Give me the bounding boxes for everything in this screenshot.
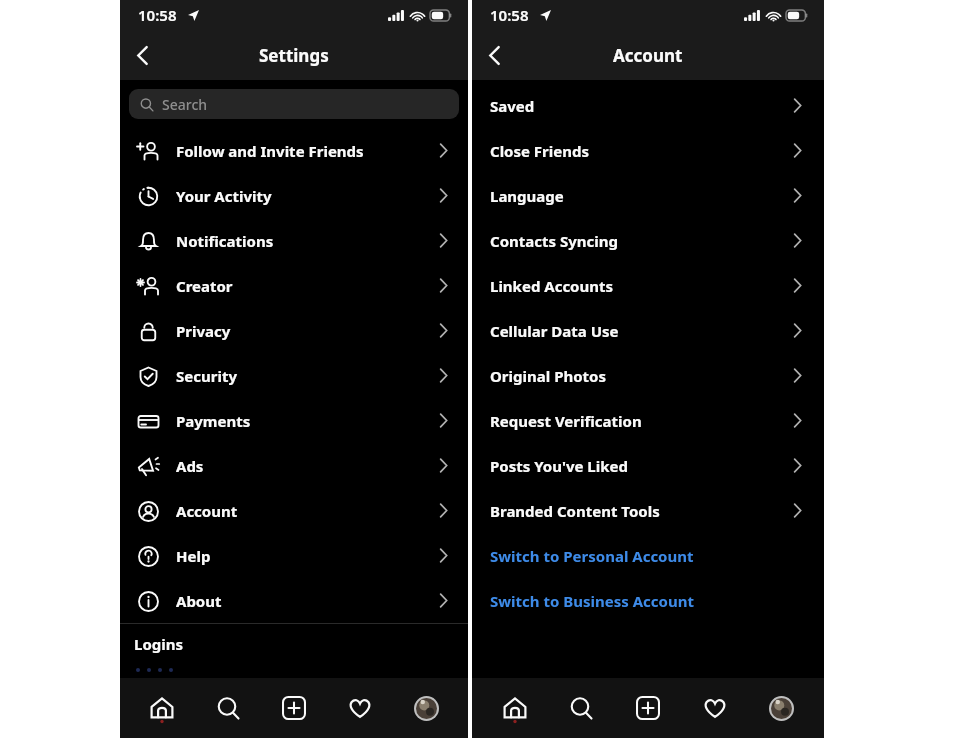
button[interactable]: Activity bbox=[691, 684, 739, 732]
staticText: Language bbox=[490, 186, 793, 206]
staticText: Switch to Business Account bbox=[490, 591, 694, 611]
button[interactable]: Request Verification bbox=[472, 398, 824, 443]
button[interactable]: Payments bbox=[120, 398, 468, 443]
staticText: Close Friends bbox=[490, 141, 793, 161]
staticText: Saved bbox=[490, 96, 793, 116]
staticText: Search bbox=[162, 95, 208, 114]
staticText: Original Photos bbox=[490, 366, 793, 386]
button[interactable]: Close Friends bbox=[472, 128, 824, 173]
staticText: Linked Accounts bbox=[490, 276, 793, 296]
button[interactable]: Activity bbox=[336, 684, 384, 732]
button[interactable]: Security bbox=[120, 353, 468, 398]
button[interactable]: Linked Accounts bbox=[472, 263, 824, 308]
staticText: Privacy bbox=[176, 321, 439, 341]
button[interactable]: Posts You've Liked bbox=[472, 443, 824, 488]
staticText: Cellular Data Use bbox=[490, 321, 793, 341]
button[interactable]: Create bbox=[270, 684, 318, 732]
button[interactable]: Follow and Invite Friends bbox=[120, 128, 468, 173]
button[interactable]: Account bbox=[120, 488, 468, 533]
button[interactable]: Cellular Data Use bbox=[472, 308, 824, 353]
staticText: Creator bbox=[176, 276, 439, 296]
staticText: 10:58 bbox=[138, 5, 177, 25]
button[interactable]: Search bbox=[204, 684, 252, 732]
staticText: Security bbox=[176, 366, 439, 386]
staticText: Settings bbox=[259, 44, 329, 67]
staticText: Notifications bbox=[176, 231, 439, 251]
staticText: Logins bbox=[134, 634, 184, 654]
button[interactable]: Profile bbox=[402, 684, 450, 732]
staticText: Request Verification bbox=[490, 411, 793, 431]
button[interactable]: Search bbox=[129, 89, 459, 119]
button[interactable]: Switch to Personal Account bbox=[472, 533, 824, 578]
button[interactable]: Create bbox=[624, 684, 672, 732]
staticText: Payments bbox=[176, 411, 439, 431]
staticText: Branded Content Tools bbox=[490, 501, 793, 521]
button[interactable]: Privacy bbox=[120, 308, 468, 353]
button[interactable]: Help bbox=[120, 533, 468, 578]
button[interactable]: Search bbox=[557, 684, 605, 732]
button[interactable]: Notifications bbox=[120, 218, 468, 263]
button[interactable]: Home bbox=[138, 684, 186, 732]
button[interactable]: Home bbox=[491, 684, 539, 732]
staticText: About bbox=[176, 591, 439, 611]
button[interactable]: Contacts Syncing bbox=[472, 218, 824, 263]
button[interactable]: Switch to Business Account bbox=[472, 578, 824, 623]
button[interactable]: Branded Content Tools bbox=[472, 488, 824, 533]
button[interactable]: Back bbox=[120, 33, 164, 77]
button[interactable]: Ads bbox=[120, 443, 468, 488]
button[interactable]: Language bbox=[472, 173, 824, 218]
button[interactable]: Saved bbox=[472, 83, 824, 128]
staticText: Switch to Personal Account bbox=[490, 546, 694, 566]
staticText: Account bbox=[613, 44, 683, 67]
staticText: 10:58 bbox=[490, 5, 529, 25]
button[interactable]: Your Activity bbox=[120, 173, 468, 218]
staticText: Account bbox=[176, 501, 439, 521]
button[interactable]: Profile bbox=[757, 684, 805, 732]
staticText: Your Activity bbox=[176, 186, 439, 206]
button[interactable]: Original Photos bbox=[472, 353, 824, 398]
staticText: Follow and Invite Friends bbox=[176, 141, 439, 161]
button[interactable]: Creator bbox=[120, 263, 468, 308]
button[interactable]: About bbox=[120, 578, 468, 623]
staticText: Posts You've Liked bbox=[490, 456, 793, 476]
staticText: Help bbox=[176, 546, 439, 566]
staticText: Ads bbox=[176, 456, 439, 476]
button[interactable]: Back bbox=[472, 33, 516, 77]
staticText: Contacts Syncing bbox=[490, 231, 793, 251]
